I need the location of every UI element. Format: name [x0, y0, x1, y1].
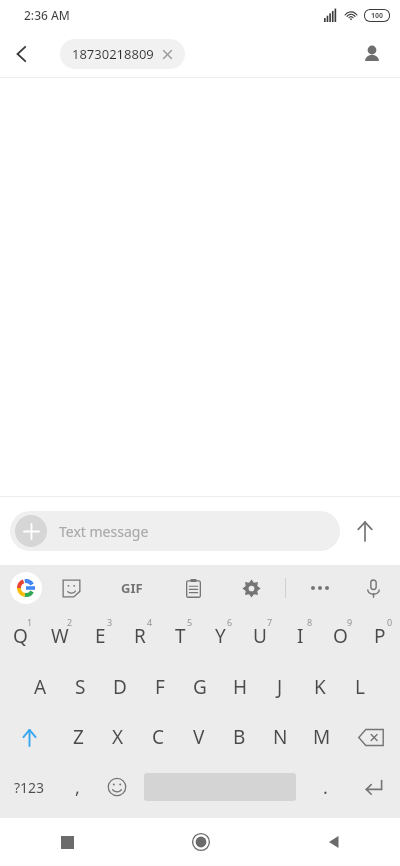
staticText: C: [152, 724, 165, 750]
staticText: 100: [371, 11, 384, 21]
staticText: 18730218809: [72, 45, 154, 63]
staticText: 5: [187, 616, 193, 628]
button[interactable]: T: [160, 610, 200, 662]
button[interactable]: Contact details: [352, 34, 392, 74]
button[interactable]: L: [340, 662, 380, 712]
staticText: P: [374, 623, 386, 649]
button[interactable]: W: [40, 610, 80, 662]
staticText: A: [34, 674, 47, 700]
staticText: 2:36 AM: [24, 7, 70, 23]
staticText: 4: [147, 616, 153, 628]
button[interactable]: F: [140, 662, 180, 712]
staticText: H: [233, 674, 248, 700]
staticText: ,: [75, 775, 80, 800]
button[interactable]: Enter: [348, 762, 400, 812]
staticText: E: [95, 623, 106, 649]
staticText: F: [155, 674, 165, 700]
staticText: X: [112, 724, 124, 750]
button[interactable]: M: [301, 712, 342, 762]
button[interactable]: S: [60, 662, 100, 712]
button[interactable]: Voice input: [356, 571, 390, 605]
staticText: 2: [67, 616, 73, 628]
button[interactable]: I: [280, 610, 320, 662]
staticText: Z: [73, 724, 84, 750]
button[interactable]: X: [98, 712, 138, 762]
button[interactable]: Y: [200, 610, 240, 662]
staticText: B: [233, 724, 246, 750]
staticText: M: [313, 724, 331, 750]
button[interactable]: A: [20, 662, 60, 712]
button[interactable]: More options: [303, 571, 337, 605]
button[interactable]: Google search: [10, 572, 42, 604]
staticText: GIF: [121, 579, 143, 597]
button[interactable]: Comma: [58, 762, 96, 812]
button[interactable]: Emoji: [96, 762, 138, 812]
staticText: 9: [347, 616, 353, 628]
button[interactable]: V: [178, 712, 219, 762]
button[interactable]: C: [138, 712, 178, 762]
button[interactable]: Back: [267, 818, 400, 866]
button[interactable]: R: [120, 610, 160, 662]
staticText: 1: [27, 616, 33, 628]
button[interactable]: B: [219, 712, 260, 762]
button[interactable]: Z: [58, 712, 98, 762]
staticText: S: [75, 674, 86, 700]
staticText: Y: [215, 623, 226, 649]
button[interactable]: Recent apps: [0, 818, 134, 866]
staticText: ?123: [14, 778, 45, 797]
button[interactable]: GIF: [112, 571, 152, 605]
button[interactable]: Back: [0, 32, 44, 76]
staticText: N: [273, 724, 288, 750]
button[interactable]: Add attachment: [10, 511, 340, 551]
staticText: L: [355, 674, 365, 700]
button[interactable]: E: [80, 610, 120, 662]
button[interactable]: Q: [0, 610, 40, 662]
button[interactable]: Stickers: [54, 571, 88, 605]
staticText: 6: [227, 616, 233, 628]
staticText: 3: [107, 616, 113, 628]
button[interactable]: Backspace: [342, 712, 400, 762]
staticText: G: [193, 674, 207, 700]
staticText: J: [277, 674, 283, 700]
button[interactable]: Add attachment: [15, 515, 47, 547]
staticText: V: [193, 724, 205, 750]
button[interactable]: G: [180, 662, 220, 712]
staticText: 7: [267, 616, 273, 628]
staticText: T: [175, 623, 186, 649]
button[interactable]: ?123: [0, 762, 58, 812]
staticText: K: [314, 674, 326, 700]
button[interactable]: P: [360, 610, 400, 662]
staticText: Q: [13, 623, 28, 649]
staticText: I: [297, 623, 304, 649]
staticText: .: [323, 775, 328, 800]
button[interactable]: Settings: [234, 571, 268, 605]
button[interactable]: O: [320, 610, 360, 662]
staticText: R: [134, 623, 146, 649]
button[interactable]: H: [220, 662, 260, 712]
staticText: D: [113, 674, 127, 700]
staticText: 0: [387, 616, 393, 628]
button[interactable]: N: [260, 712, 301, 762]
staticText: O: [333, 623, 348, 649]
button[interactable]: J: [260, 662, 300, 712]
button[interactable]: K: [300, 662, 340, 712]
button[interactable]: U: [240, 610, 280, 662]
staticText: U: [253, 623, 267, 649]
button[interactable]: Send: [340, 509, 390, 553]
button[interactable]: Shift: [0, 712, 58, 762]
button[interactable]: 18730218809: [60, 39, 185, 69]
button[interactable]: Period: [302, 762, 348, 812]
button[interactable]: Home: [134, 818, 267, 866]
button[interactable]: D: [100, 662, 140, 712]
button[interactable]: Clipboard: [176, 571, 210, 605]
staticText: Text message: [59, 522, 149, 541]
staticText: W: [51, 623, 69, 649]
staticText: 8: [307, 616, 313, 628]
